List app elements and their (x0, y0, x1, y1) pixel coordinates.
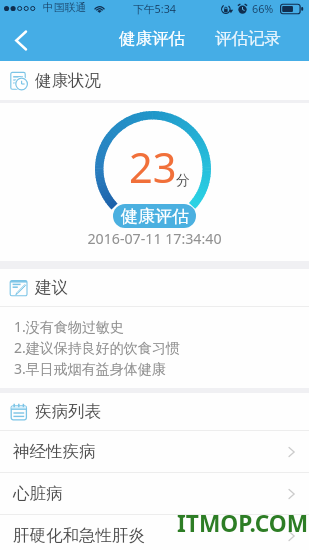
staticText: 23 (129, 139, 177, 196)
staticText: 2.建议保持良好的饮食习惯 (14, 338, 180, 357)
staticText: ITMOP.COM (177, 508, 309, 539)
button[interactable]: 评估记录 (207, 24, 289, 53)
button[interactable]: 健康评估 (111, 24, 193, 53)
staticText: 疾病列表 (35, 401, 101, 422)
staticText: 1.没有食物过敏史 (14, 317, 124, 336)
staticText: 肝硬化和急性肝炎 (13, 525, 145, 546)
staticText: 心脏病 (13, 483, 63, 504)
button[interactable]: 健康评估 (113, 204, 196, 228)
staticText: 建议 (35, 277, 68, 298)
button[interactable]: 返回 (4, 23, 38, 57)
staticText: 3.早日戒烟有益身体健康 (14, 359, 166, 378)
button[interactable]: 心脏病 (0, 473, 309, 514)
staticText: 评估记录 (215, 28, 281, 49)
staticText: 健康状况 (35, 70, 101, 91)
staticText: 分 (176, 172, 190, 190)
button[interactable]: 肝硬化和急性肝炎 (0, 515, 309, 550)
staticText: 健康评估 (119, 28, 185, 49)
button[interactable]: 神经性疾病 (0, 431, 309, 472)
staticText: 2016-07-11 17:34:40 (0, 229, 309, 248)
staticText: 神经性疾病 (13, 441, 96, 462)
staticText: 健康评估 (121, 206, 189, 227)
staticText: 66% (252, 1, 274, 16)
staticText: 下午5:34 (0, 1, 309, 16)
staticText: 中国联通 (43, 1, 87, 15)
